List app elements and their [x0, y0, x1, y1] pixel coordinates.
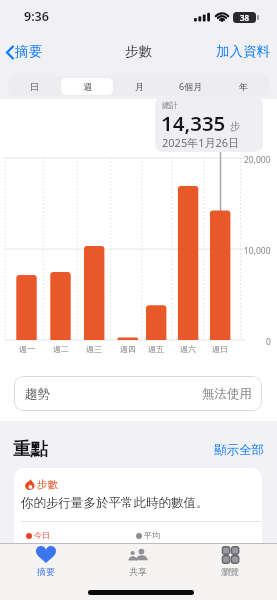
button[interactable]: 瀏覽	[184, 543, 276, 583]
staticText: 步數	[37, 478, 58, 491]
staticText: 週四	[120, 344, 136, 354]
button[interactable]: 月	[113, 76, 165, 96]
button[interactable]: 步數	[14, 468, 262, 600]
button[interactable]: 日	[8, 76, 61, 96]
staticText: 週一	[19, 344, 35, 354]
button[interactable]: 6個月	[165, 76, 217, 96]
staticText: 瀏覽	[221, 566, 239, 577]
staticText: 日	[30, 81, 39, 92]
staticText: 週五	[148, 344, 164, 354]
button[interactable]: 加入資料	[210, 43, 270, 63]
staticText: 趨勢	[25, 386, 50, 402]
button[interactable]: 摘要	[0, 543, 92, 583]
staticText: 週日	[212, 344, 228, 354]
staticText: 38	[240, 12, 250, 23]
staticText: 6個月	[179, 80, 203, 92]
staticText: 今日	[34, 530, 50, 540]
staticText: 步數	[125, 43, 152, 60]
staticText: 9:36	[24, 8, 49, 25]
staticText: 週六	[180, 344, 196, 354]
staticText: 你的步行量多於平常此時的數值。	[21, 495, 209, 511]
staticText: 無法使用	[202, 386, 252, 402]
button[interactable]: 週	[61, 76, 113, 96]
staticText: 2025年1月26日	[162, 135, 240, 150]
staticText: 0	[266, 336, 271, 348]
staticText: 14,335	[161, 109, 226, 137]
staticText: 週二	[53, 344, 69, 354]
staticText: 總計	[162, 100, 178, 110]
staticText: 摘要	[37, 566, 55, 577]
staticText: 重點	[13, 438, 48, 460]
staticText: 步	[230, 120, 241, 133]
button[interactable]: 年	[217, 76, 269, 96]
staticText: 年	[239, 81, 248, 92]
staticText: 平均	[144, 530, 160, 540]
staticText: 週三	[86, 344, 102, 354]
staticText: 摘要	[15, 43, 42, 60]
staticText: 20,000	[244, 154, 271, 166]
button[interactable]: 趨勢	[14, 376, 262, 411]
button[interactable]: 摘要	[3, 43, 65, 63]
staticText: 月	[135, 81, 144, 92]
button[interactable]: 共享	[92, 543, 184, 583]
button[interactable]: 顯示全部	[190, 442, 264, 460]
staticText: 顯示全部	[214, 442, 264, 458]
staticText: 週	[83, 81, 92, 92]
staticText: 10,000	[244, 245, 271, 257]
staticText: 加入資料	[216, 43, 270, 60]
staticText: 共享	[129, 566, 147, 577]
